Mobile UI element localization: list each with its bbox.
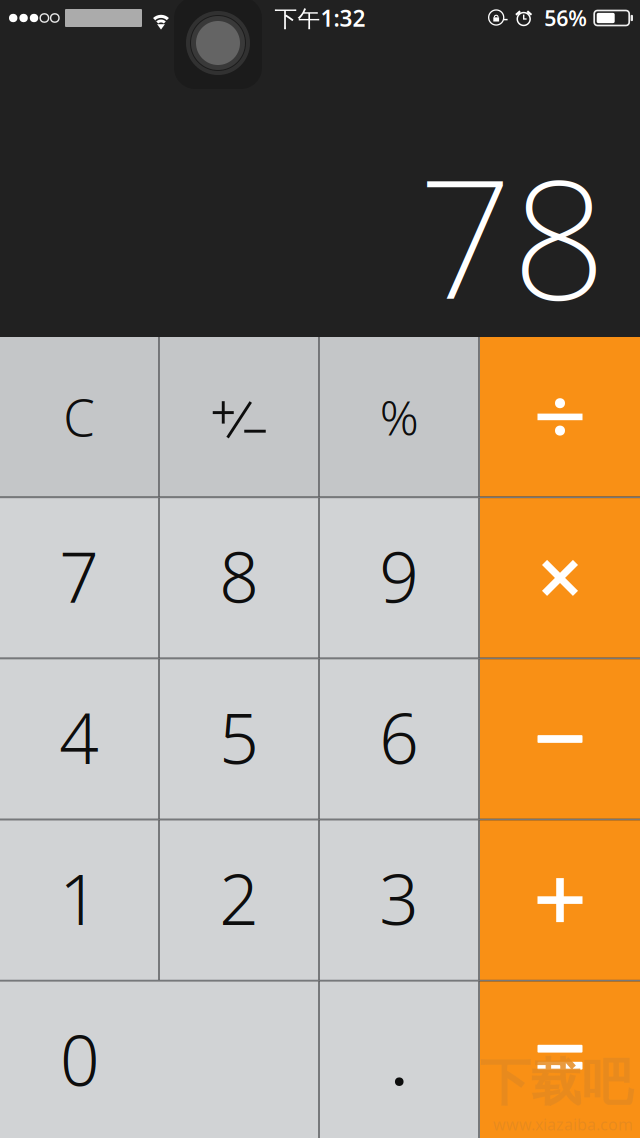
button[interactable]: 5 — [160, 659, 318, 819]
button[interactable]: % — [320, 337, 478, 497]
button[interactable]: Equals — [480, 981, 640, 1138]
staticText: 8 — [219, 530, 259, 622]
button[interactable]: 7 — [0, 498, 158, 658]
staticText: 78 — [418, 125, 606, 345]
button[interactable]: Plus minus — [160, 337, 318, 497]
button[interactable]: Multiply — [480, 498, 640, 658]
staticText: 7 — [59, 530, 99, 622]
button[interactable]: 6 — [320, 659, 478, 819]
staticText: 1 — [59, 852, 99, 944]
staticText: 3 — [379, 852, 419, 944]
button[interactable]: Minus — [480, 659, 640, 819]
staticText: 9 — [379, 530, 419, 622]
staticText: 下载吧 — [480, 1051, 633, 1114]
button[interactable]: 0 — [0, 981, 318, 1138]
button[interactable]: 9 — [320, 498, 478, 658]
button[interactable]: Plus — [480, 820, 640, 980]
staticText: 2 — [219, 852, 259, 944]
staticText: 6 — [379, 691, 419, 783]
staticText: 0 — [60, 1013, 100, 1105]
staticText: 5 — [219, 691, 259, 783]
button[interactable]: 2 — [160, 820, 318, 980]
button[interactable]: C — [0, 337, 158, 497]
staticText: 56% — [544, 4, 587, 32]
button[interactable]: 1 — [0, 820, 158, 980]
staticText: 4 — [59, 691, 99, 783]
button[interactable]: 4 — [0, 659, 158, 819]
button[interactable]: Divide — [480, 337, 640, 497]
staticText: % — [380, 385, 419, 449]
button[interactable]: Decimal point — [320, 981, 478, 1138]
staticText: C — [63, 383, 95, 450]
button[interactable]: 3 — [320, 820, 478, 980]
button[interactable]: 8 — [160, 498, 318, 658]
staticText: www.xiazaiba.com — [493, 1114, 633, 1135]
staticText: 下午1:32 — [274, 3, 365, 33]
